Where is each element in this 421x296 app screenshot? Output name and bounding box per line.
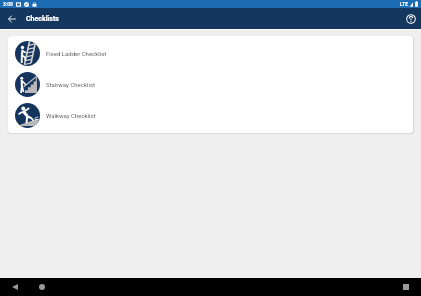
staticText: Checklists [26, 15, 59, 23]
button[interactable]: Recent apps [400, 281, 412, 293]
staticText: Stairway Checklist [46, 81, 95, 88]
staticText: LTE [400, 1, 408, 7]
button[interactable]: Help [400, 8, 421, 29]
staticText: 3:08 [3, 1, 13, 7]
button[interactable]: Home [36, 281, 48, 293]
staticText: Fixed Ladder Checklist [46, 50, 107, 57]
staticText: Walkway Checklist [46, 112, 96, 119]
button[interactable]: Fixed Ladder Checklist [8, 38, 413, 69]
button[interactable]: Walkway Checklist [8, 100, 413, 131]
button[interactable]: Back [0, 8, 24, 29]
button[interactable]: Stairway Checklist [8, 69, 413, 100]
button[interactable]: Back [9, 281, 21, 293]
